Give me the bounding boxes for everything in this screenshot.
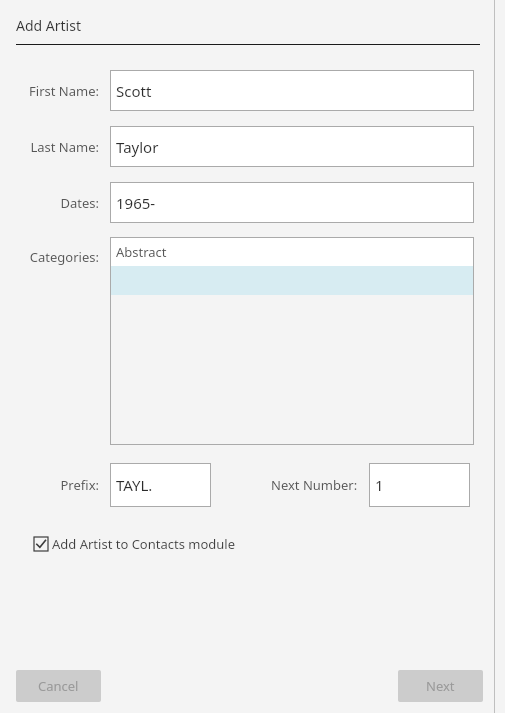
staticText: Next Number: — [271, 476, 358, 494]
button[interactable]: Cancel — [16, 670, 101, 702]
staticText: 1965- — [116, 193, 156, 213]
button[interactable] — [110, 266, 474, 295]
staticText: Categories: — [29, 248, 99, 266]
staticText: Dates: — [0, 194, 99, 212]
button[interactable]: Abstract — [110, 237, 474, 266]
staticText: Last Name: — [0, 138, 99, 156]
button[interactable]: 1965- — [110, 182, 474, 223]
staticText: Abstract — [116, 243, 167, 261]
staticText: Add Artist — [16, 16, 81, 35]
staticText: 1 — [375, 475, 384, 495]
staticText: First Name: — [0, 82, 99, 100]
staticText: Taylor — [116, 137, 159, 157]
staticText: TAYL. — [116, 475, 153, 495]
button[interactable]: Taylor — [110, 126, 474, 167]
staticText: Prefix: — [0, 476, 99, 494]
button[interactable]: 1 — [369, 463, 470, 507]
button[interactable]: Next — [398, 670, 483, 702]
staticText: Cancel — [38, 677, 79, 695]
button[interactable]: TAYL. — [110, 463, 211, 507]
staticText: Add Artist to Contacts module — [52, 535, 236, 553]
button[interactable]: Add Artist to Contacts module — [34, 535, 236, 553]
staticText: Scott — [116, 81, 152, 101]
button[interactable]: Scott — [110, 70, 474, 111]
staticText: Next — [426, 677, 455, 695]
